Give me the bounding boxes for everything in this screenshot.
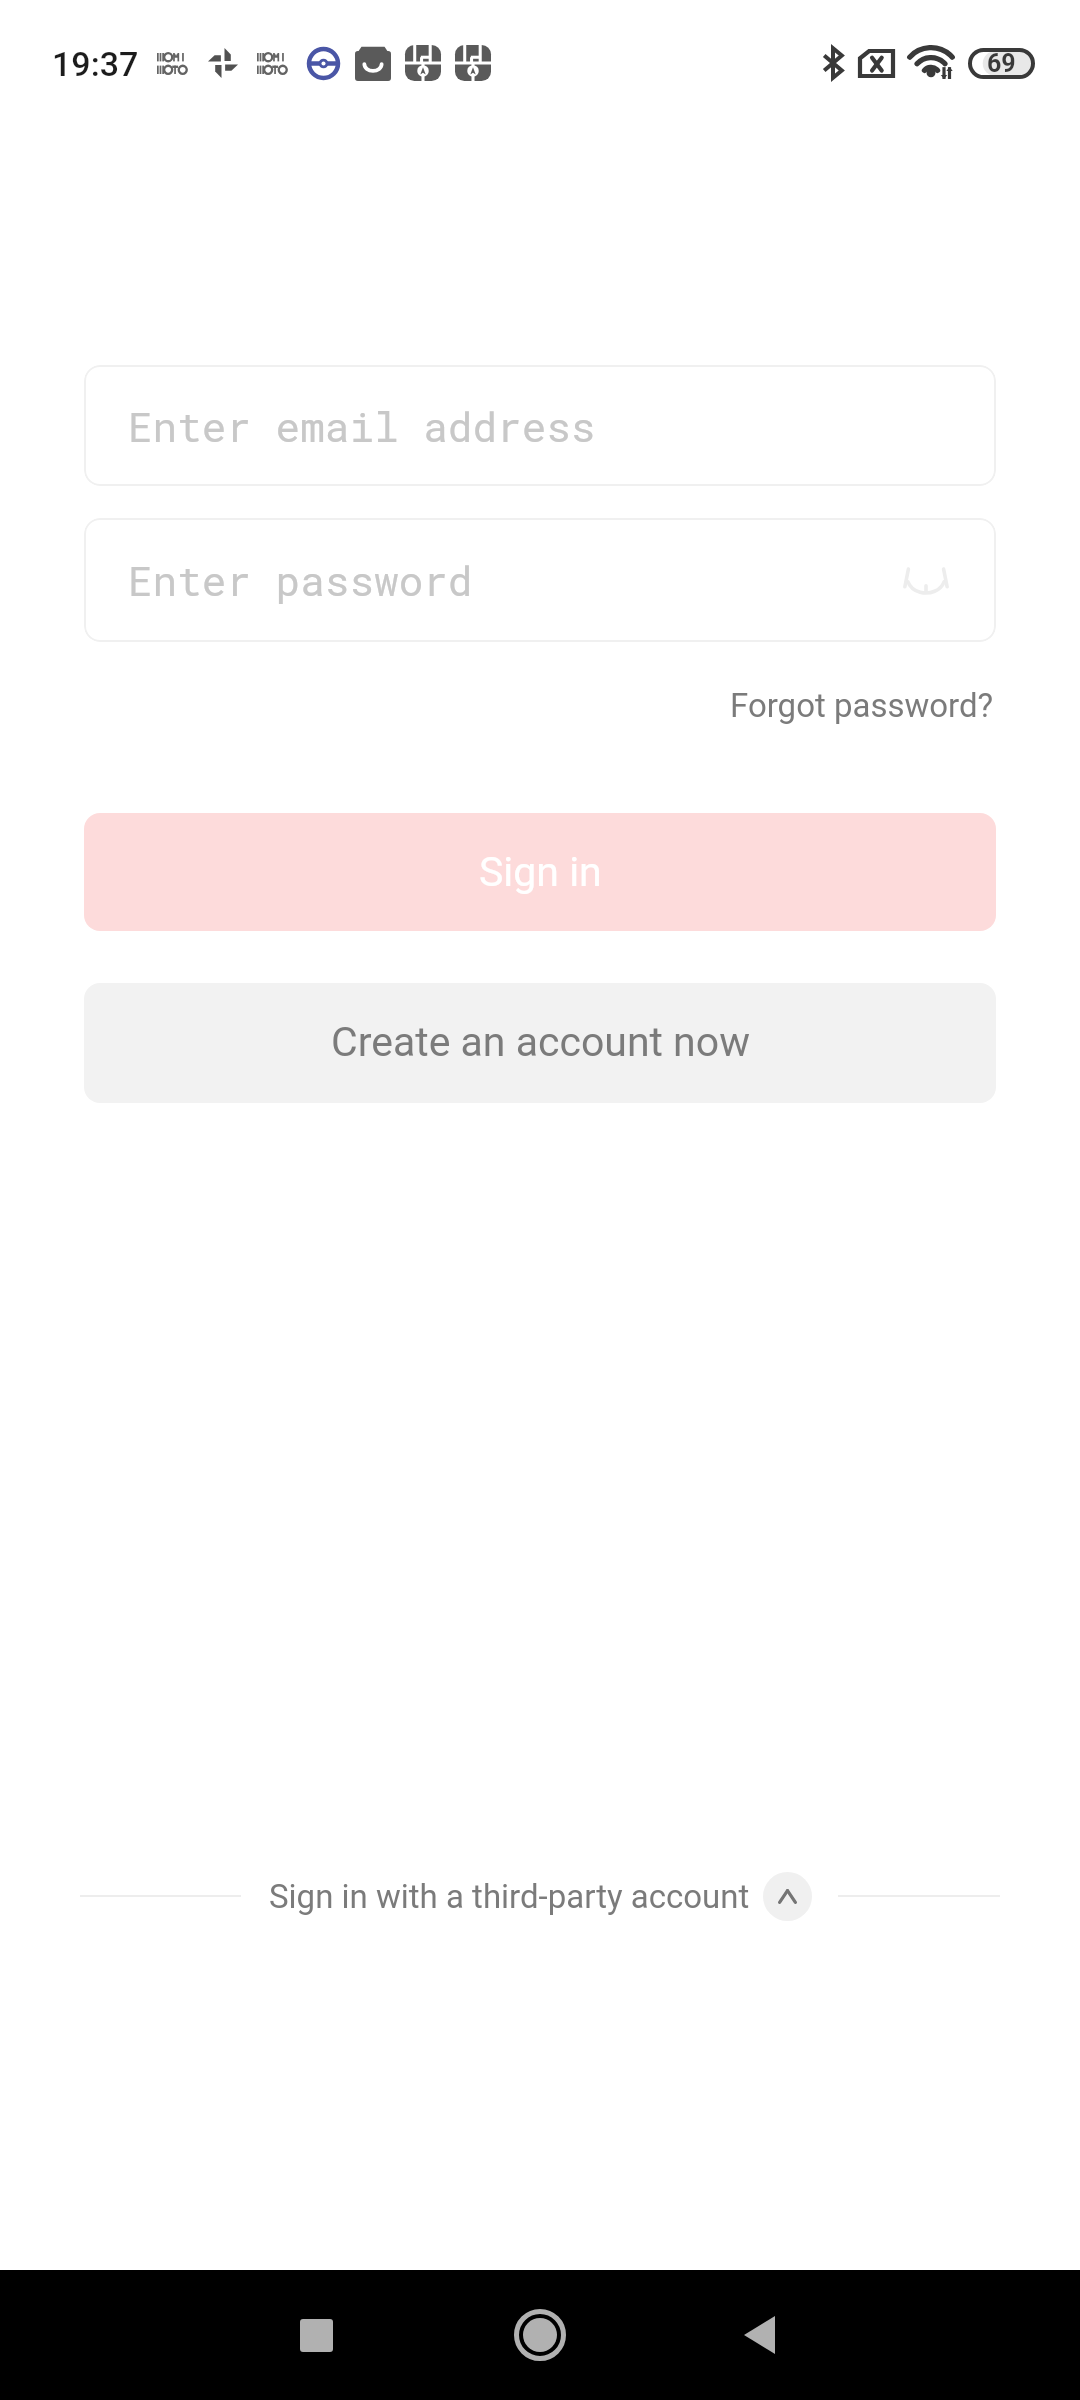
button[interactable]: Back [713, 2289, 805, 2381]
staticText: Sign in with a third-party account [269, 1877, 750, 1916]
button[interactable]: Create an account now [84, 983, 996, 1103]
button[interactable]: Enter email address [84, 365, 996, 486]
button[interactable]: Sign in with a third-party account [269, 1872, 812, 1921]
staticText: 19:37 [52, 44, 139, 84]
button[interactable]: Home [494, 2289, 586, 2381]
staticText: Forgot password? [730, 686, 994, 725]
staticText: Sign in [479, 848, 602, 896]
staticText: 69 [987, 49, 1016, 78]
staticText: Create an account now [331, 1018, 750, 1066]
button[interactable]: Forgot password? [714, 676, 1010, 735]
button[interactable]: Enter password [84, 518, 996, 642]
button[interactable]: Recent apps [270, 2289, 362, 2381]
button[interactable]: Sign in [84, 813, 996, 931]
staticText: Enter email address [128, 399, 596, 453]
button[interactable]: Show password [889, 543, 963, 617]
staticText: Enter password [128, 553, 473, 607]
